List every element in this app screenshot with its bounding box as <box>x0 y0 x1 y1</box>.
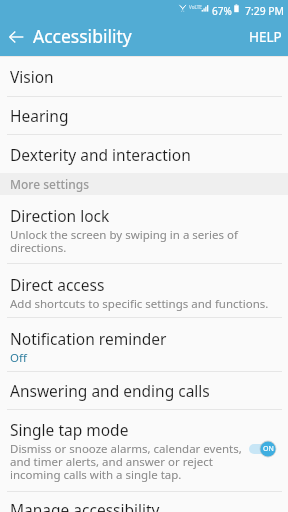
button[interactable]: Navigate up <box>0 18 33 56</box>
button[interactable]: Single tap mode <box>0 410 288 491</box>
staticText: 7:29 PM <box>245 4 285 18</box>
staticText: Single tap mode <box>10 419 129 440</box>
staticText: ON <box>263 444 274 454</box>
staticText: 67% <box>212 4 232 18</box>
button[interactable]: Single tap mode, on <box>249 440 276 458</box>
button[interactable]: Notification reminder <box>0 318 288 371</box>
staticText: Notification reminder <box>10 328 167 349</box>
staticText: Direction lock <box>10 205 110 226</box>
staticText: VoLTE <box>189 4 202 10</box>
button[interactable]: Dexterity and interaction <box>0 135 288 173</box>
button[interactable]: Answering and ending calls <box>0 372 288 409</box>
button[interactable]: Direct access <box>0 264 288 317</box>
staticText: HELP <box>249 28 282 46</box>
staticText: Unlock the screen by swiping in a series… <box>10 227 238 256</box>
button[interactable]: Manage accessibility <box>0 492 288 512</box>
button[interactable]: Direction lock <box>0 195 288 263</box>
staticText: Dexterity and interaction <box>10 144 191 165</box>
staticText: Dismiss or snooze alarms, calendar event… <box>10 441 242 483</box>
staticText: Answering and ending calls <box>10 380 210 401</box>
button[interactable]: HELP <box>238 18 288 56</box>
staticText: Vision <box>10 66 54 87</box>
staticText: Add shortcuts to specific settings and f… <box>10 296 269 312</box>
button[interactable]: Hearing <box>0 97 288 134</box>
staticText: Manage accessibility <box>10 499 160 512</box>
staticText: More settings <box>10 176 90 192</box>
staticText: Accessibility <box>33 24 132 48</box>
button[interactable]: Vision <box>0 57 288 96</box>
staticText: Direct access <box>10 274 105 295</box>
staticText: Hearing <box>10 105 69 126</box>
staticText: Off <box>10 350 27 366</box>
